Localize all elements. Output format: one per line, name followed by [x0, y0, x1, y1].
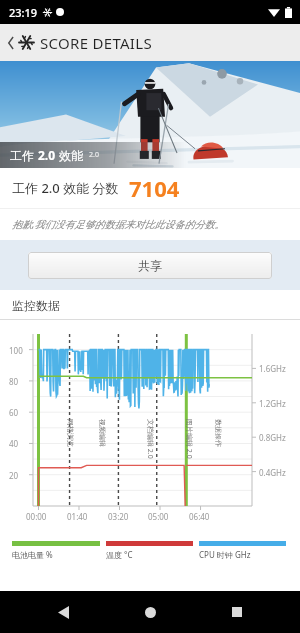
staticText: 视频编辑 — [98, 419, 107, 447]
staticText: 2.0 — [89, 150, 99, 160]
button[interactable]: 共享 — [28, 252, 272, 279]
staticText: 工作 — [10, 147, 38, 163]
button[interactable]: Back — [3, 24, 19, 61]
staticText: 0.8GHz — [259, 432, 286, 443]
button[interactable]: Back — [39, 591, 87, 633]
button[interactable]: Recent apps — [213, 591, 261, 633]
staticText: 温度 °C — [106, 549, 133, 560]
staticText: 00:00 — [26, 511, 47, 522]
staticText: 03:20 — [108, 511, 129, 522]
staticText: SCORE DETAILS — [40, 33, 152, 53]
staticText: 01:40 — [67, 511, 88, 522]
staticText: 60 — [9, 407, 19, 418]
staticText: 80 — [9, 376, 19, 387]
staticText: 06:40 — [189, 511, 210, 522]
staticText: 工作 2.0 效能 分数 — [12, 179, 119, 197]
staticText: 05:00 — [148, 511, 169, 522]
staticText: 1.6GHz — [259, 363, 286, 374]
staticText: 效能 — [56, 147, 84, 163]
staticText: 2.0 — [38, 147, 56, 163]
staticText: 100 — [9, 345, 23, 356]
staticText: CPU 时钟 GHz — [199, 549, 251, 560]
staticText: 40 — [9, 438, 19, 449]
staticText: 20 — [9, 470, 19, 481]
staticText: 数据操作 — [214, 419, 223, 447]
staticText: 电池电量 % — [12, 549, 53, 560]
staticText: 7104 — [129, 173, 180, 203]
staticText: 监控数据 — [12, 298, 60, 313]
staticText: 23:19 — [9, 5, 38, 20]
staticText: 共享 — [138, 258, 162, 273]
staticText: 1.2GHz — [259, 398, 286, 409]
staticText: 抱歉,我们没有足够的数据来对比此设备的分数。 — [12, 217, 225, 231]
staticText: 文档编辑 2.0 — [145, 419, 155, 459]
staticText: 0.4GHz — [259, 467, 286, 478]
button[interactable]: Home — [126, 591, 174, 633]
staticText: 图片编辑 2.0 — [184, 419, 194, 459]
staticText: 网格浏览 — [66, 419, 75, 447]
